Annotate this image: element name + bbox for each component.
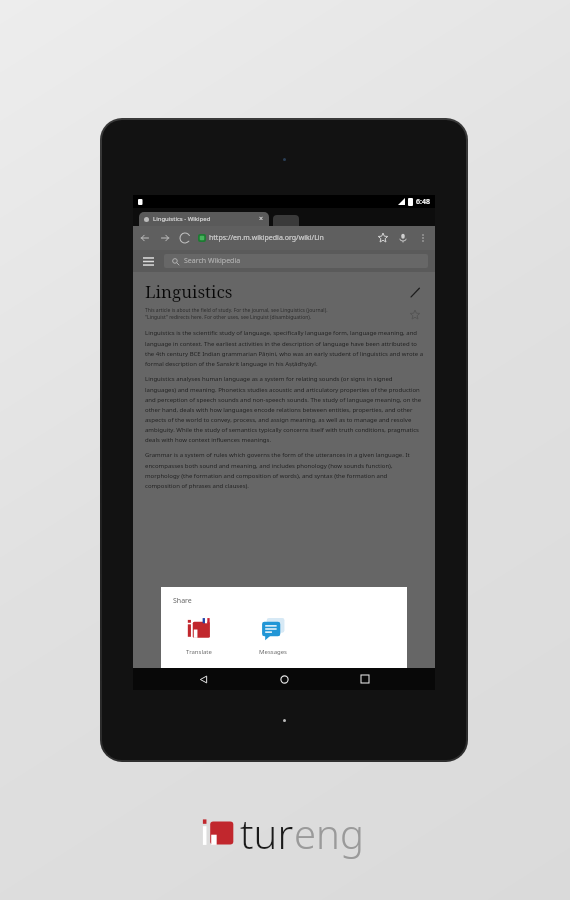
button[interactable]: Edit	[407, 284, 423, 300]
button[interactable]: More options	[416, 231, 430, 245]
button[interactable]	[273, 215, 299, 226]
staticText: "Linguist" redirects here. For other use…	[145, 314, 312, 321]
button[interactable]: tur	[200, 806, 364, 860]
button[interactable]: Back	[138, 231, 152, 245]
button[interactable]: Recent apps	[354, 668, 376, 690]
button[interactable]: Reload	[178, 231, 192, 245]
button[interactable]: Bookmark	[376, 231, 390, 245]
button[interactable]: Forward	[158, 231, 172, 245]
button[interactable]: Menu	[140, 253, 156, 269]
staticText: Linguistics - Wikiped	[153, 215, 211, 223]
button[interactable]: Back	[192, 668, 214, 690]
staticText: ×	[259, 214, 264, 224]
staticText: Search Wikipedia	[184, 256, 241, 266]
button[interactable]: https://en.m.wikipedia.org/wiki/Lin	[198, 233, 376, 243]
button[interactable]: Translate	[173, 616, 225, 656]
button[interactable]: Save article	[407, 307, 423, 323]
button[interactable]: Home	[273, 668, 295, 690]
button[interactable]: Voice search	[396, 231, 410, 245]
staticText: eng	[294, 806, 364, 860]
staticText: Linguistics analyses human language as a…	[145, 375, 423, 444]
button[interactable]: Messages	[247, 616, 299, 656]
staticText: Translate	[186, 648, 212, 656]
staticText: https://en.m.wikipedia.org/wiki/Lin	[209, 233, 324, 243]
button[interactable]: Linguistics - Wikiped	[139, 212, 269, 226]
staticText: Grammar is a system of rules which gover…	[145, 451, 423, 490]
staticText: Share	[173, 596, 192, 606]
staticText: Linguistics	[145, 280, 233, 303]
staticText: Linguistics is the scientific study of l…	[145, 329, 423, 368]
button[interactable]: Search Wikipedia	[164, 254, 428, 268]
staticText: 6:48	[416, 197, 430, 207]
staticText: Messages	[259, 648, 287, 656]
staticText: tur	[240, 806, 294, 860]
staticText: This article is about the field of study…	[145, 307, 328, 314]
